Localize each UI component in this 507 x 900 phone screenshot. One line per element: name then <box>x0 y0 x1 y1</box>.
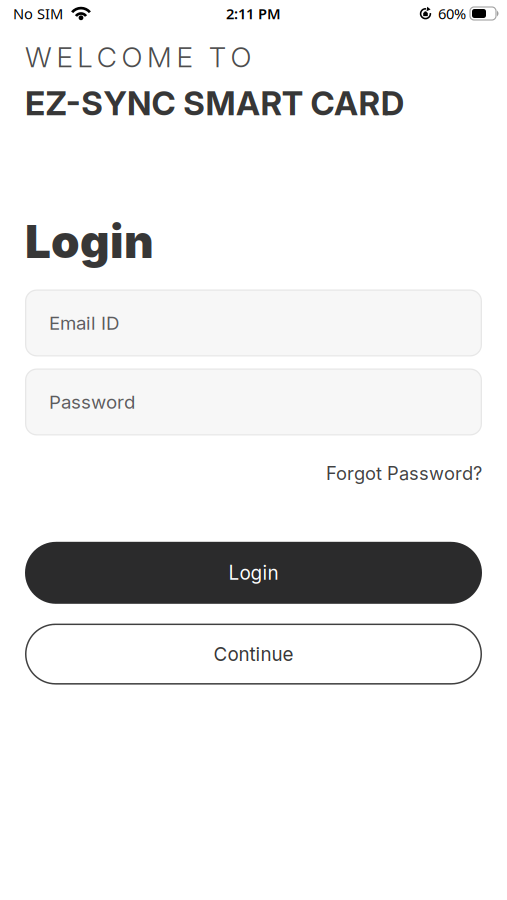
staticText: Continue <box>213 643 293 665</box>
button[interactable]: Continue <box>25 624 482 685</box>
staticText: No SIM <box>13 4 63 23</box>
staticText: EZ-SYNC SMART CARD <box>25 83 404 123</box>
button[interactable]: Password <box>25 368 482 435</box>
staticText: 2:11 PM <box>226 4 281 23</box>
staticText: Login <box>228 561 278 584</box>
staticText: Password <box>49 391 135 413</box>
staticText: Login <box>25 214 154 269</box>
button[interactable]: Forgot Password? <box>326 462 482 484</box>
button[interactable]: Login <box>25 542 482 604</box>
staticText: 60% <box>438 4 466 23</box>
button[interactable]: Email ID <box>25 289 482 356</box>
staticText: Forgot Password? <box>326 462 482 484</box>
staticText: Email ID <box>49 312 119 334</box>
staticText: WELCOME TO <box>25 40 251 74</box>
